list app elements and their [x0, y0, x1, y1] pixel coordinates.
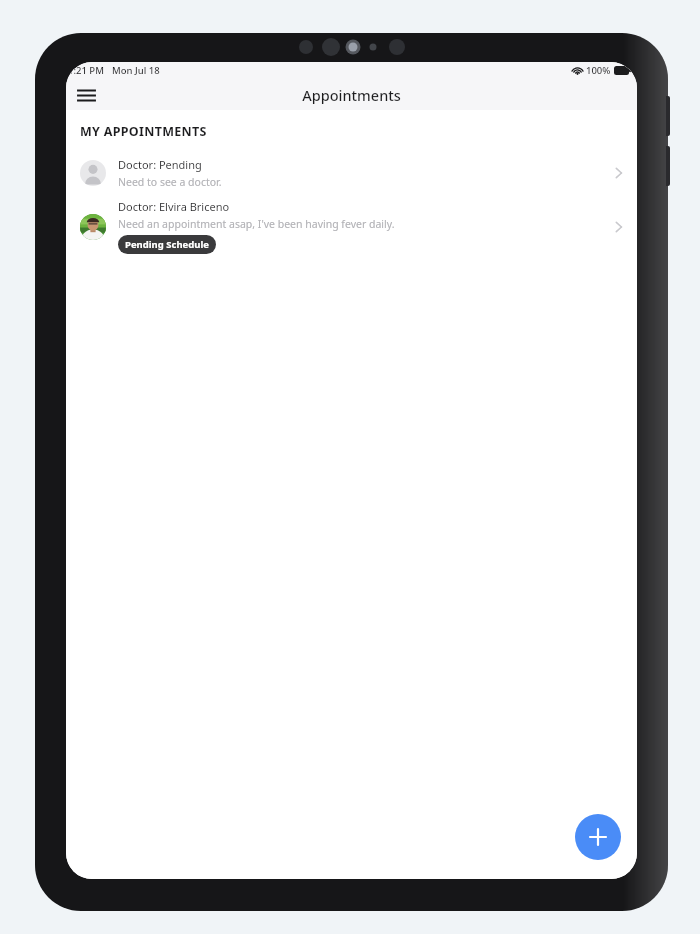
staticText: MY APPOINTMENTS — [80, 123, 207, 140]
staticText: 1:21 PM — [68, 64, 104, 77]
button[interactable]: Add appointment — [575, 814, 621, 860]
staticText: Pending Schedule — [125, 238, 209, 251]
staticText: Need an appointment asap, I've been havi… — [118, 217, 395, 231]
staticText: Doctor: Elvira Briceno — [118, 199, 230, 214]
button[interactable]: Doctor: Pending — [66, 152, 637, 194]
staticText: Need to see a doctor. — [118, 175, 222, 189]
staticText: Doctor: Pending — [118, 157, 202, 172]
staticText: 100% — [586, 64, 611, 77]
staticText: Appointments — [302, 85, 401, 105]
button[interactable]: Doctor: Elvira Briceno — [66, 194, 637, 259]
staticText: Mon Jul 18 — [112, 64, 160, 77]
button[interactable]: Menu — [71, 80, 101, 110]
